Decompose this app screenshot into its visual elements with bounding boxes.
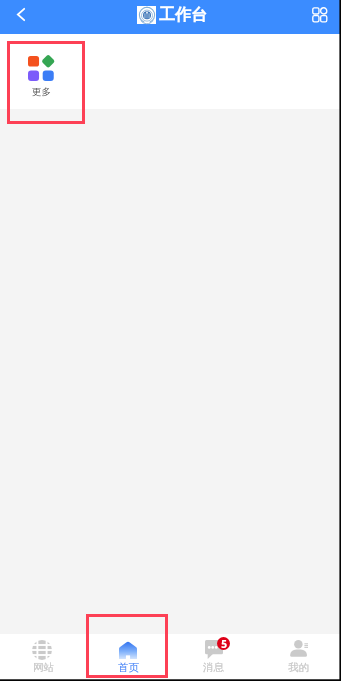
button[interactable]: 5 xyxy=(171,634,256,679)
button[interactable]: 网站 xyxy=(0,634,86,679)
staticText: 更多 xyxy=(32,86,51,98)
staticText: 5 xyxy=(221,637,227,650)
button[interactable]: Back xyxy=(4,0,38,31)
staticText: 网站 xyxy=(33,661,54,674)
button[interactable]: 我的 xyxy=(256,634,341,679)
staticText: 消息 xyxy=(203,661,224,674)
staticText: 我的 xyxy=(288,661,309,674)
staticText: 工作台 xyxy=(159,5,207,25)
button[interactable]: 更多 xyxy=(13,56,69,98)
staticText: 首页 xyxy=(118,661,139,674)
button[interactable]: 首页 xyxy=(86,634,171,679)
button[interactable]: Apps xyxy=(306,1,332,27)
